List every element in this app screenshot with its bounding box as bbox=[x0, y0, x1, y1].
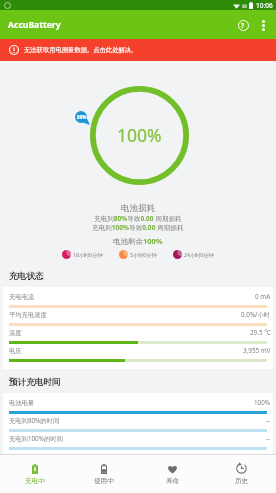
staticText: 无法获取用电测量数据。点击此处解决。 bbox=[24, 46, 138, 54]
button[interactable]: 使用中 bbox=[69, 455, 138, 493]
staticText: 电压 bbox=[9, 347, 22, 355]
button[interactable]: 充电到80%的时间 bbox=[3, 416, 273, 434]
staticText: 使用中 bbox=[94, 477, 114, 485]
staticText: ? bbox=[241, 21, 245, 30]
staticText: AccuBattery bbox=[8, 19, 61, 31]
button[interactable]: 充电中 bbox=[0, 455, 69, 493]
staticText: 温度 bbox=[9, 329, 22, 337]
button[interactable]: 寿命 bbox=[138, 455, 207, 493]
button[interactable]: 电压 bbox=[3, 346, 273, 364]
staticText: 100% bbox=[254, 398, 271, 407]
staticText: 24小时0分钟 bbox=[184, 251, 214, 258]
staticText: 充电到80%的时间 bbox=[9, 416, 60, 425]
staticText: 充电到80%导致0.00 周期损耗 bbox=[94, 214, 182, 223]
staticText: 10:06 bbox=[256, 1, 273, 10]
staticText: 0 mA bbox=[255, 292, 271, 301]
staticText: 80% bbox=[77, 114, 87, 120]
button[interactable]: 历史 bbox=[207, 455, 276, 493]
staticText: 充电电流 bbox=[9, 293, 35, 301]
staticText: 100% bbox=[117, 123, 162, 147]
staticText: 29.5 °C bbox=[250, 328, 271, 337]
staticText: 18小时0分钟 bbox=[73, 251, 103, 258]
button[interactable]: 温度 bbox=[3, 328, 273, 346]
staticText: 寿命 bbox=[166, 477, 180, 485]
staticText: 电池损耗 bbox=[121, 203, 155, 214]
staticText: 5小时0分钟 bbox=[130, 251, 157, 258]
staticText: 电池电量 bbox=[9, 399, 35, 407]
button[interactable]: 无法获取用电测量数据。点击此处解决。 bbox=[0, 39, 276, 61]
staticText: 历史 bbox=[235, 477, 249, 485]
staticText: 0.0%/小时 bbox=[241, 310, 271, 319]
staticText: 充电到100%导致0.00 周期损耗 bbox=[92, 223, 184, 232]
button[interactable]: 平均充电速度 bbox=[3, 310, 273, 328]
staticText: 3,955 mV bbox=[243, 346, 271, 355]
staticText: 充电到100%的时间 bbox=[9, 434, 63, 443]
staticText: 平均充电速度 bbox=[9, 311, 47, 319]
staticText: 充电中 bbox=[25, 477, 45, 485]
staticText: 电池剩余100% bbox=[113, 236, 163, 246]
staticText: 预计充电时间 bbox=[9, 377, 61, 388]
button[interactable]: 电池电量 bbox=[3, 398, 273, 416]
button[interactable]: Help bbox=[233, 12, 253, 38]
button[interactable]: More options bbox=[253, 12, 273, 38]
staticText: 充电状态 bbox=[9, 271, 44, 282]
button[interactable]: 充电到100%的时间 bbox=[3, 434, 273, 452]
staticText: -- bbox=[266, 434, 271, 443]
button[interactable]: 充电电流 bbox=[3, 292, 273, 310]
staticText: -- bbox=[266, 416, 271, 425]
